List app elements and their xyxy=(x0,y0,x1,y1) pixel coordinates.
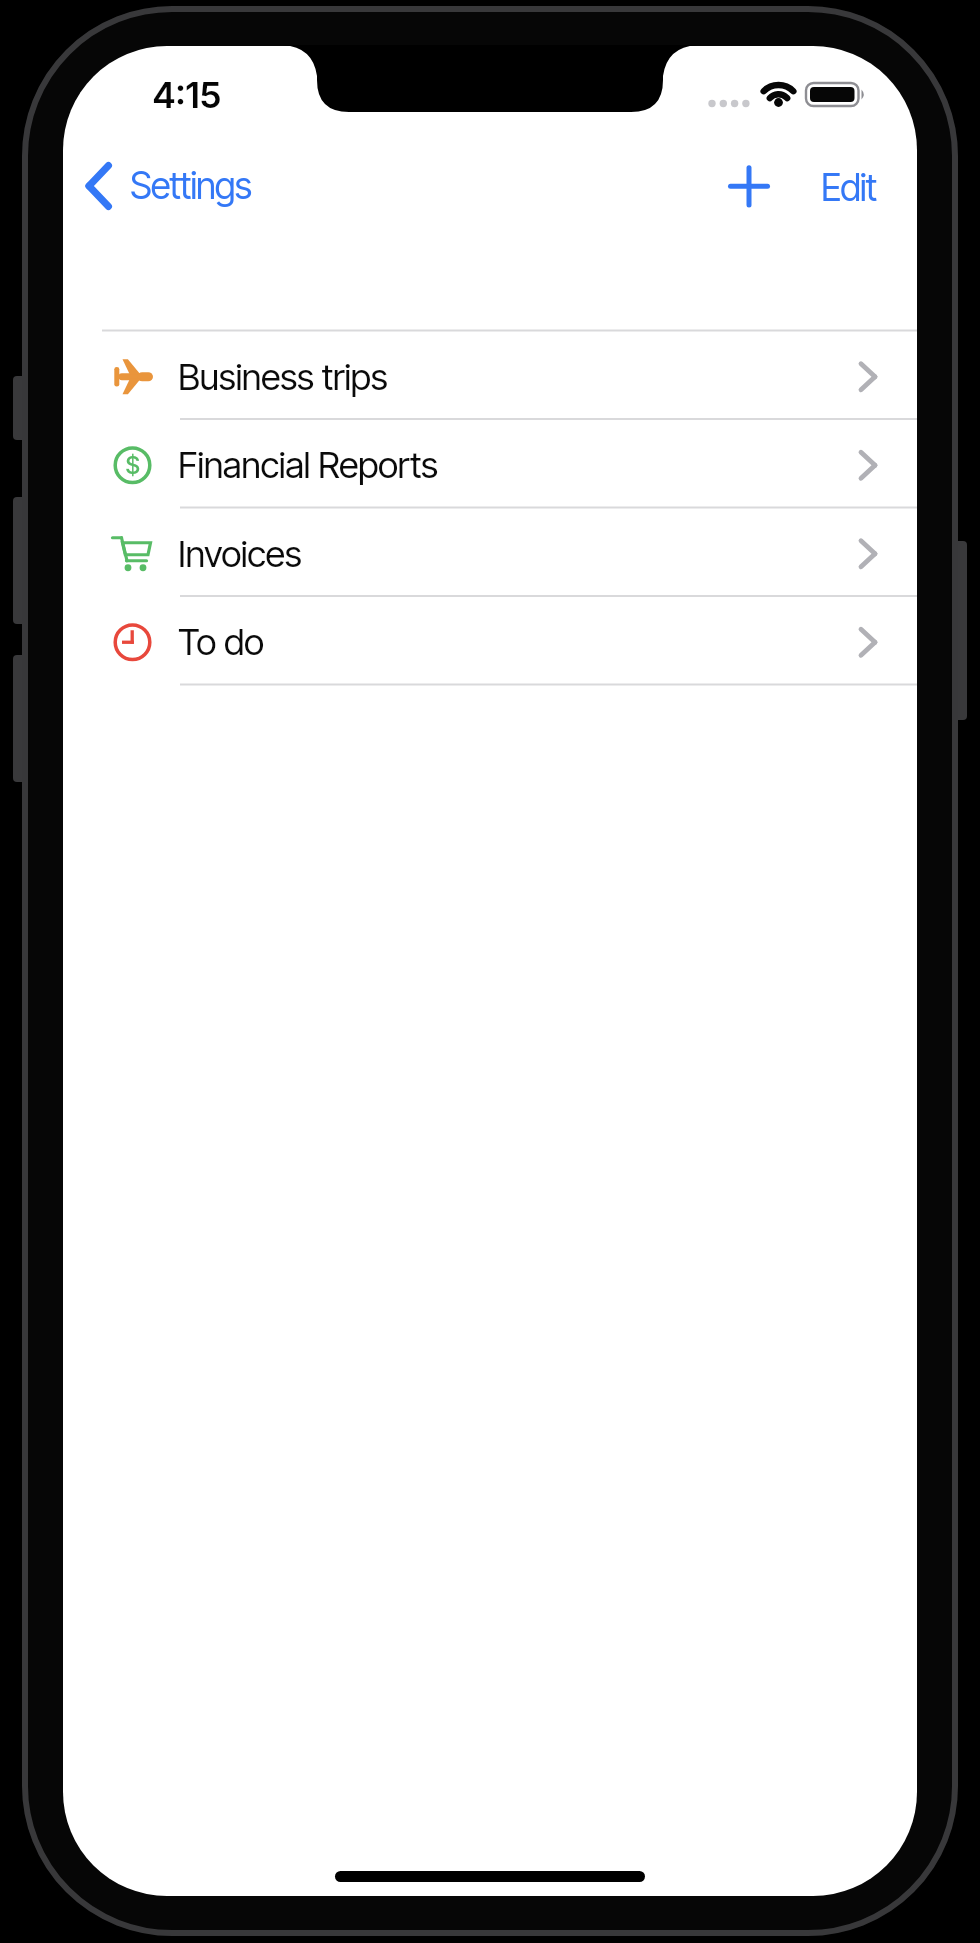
button[interactable]: Edit xyxy=(806,162,892,212)
button[interactable]: Financial Reports xyxy=(63,419,917,507)
staticText: Settings xyxy=(130,163,251,208)
staticText: Business trips xyxy=(178,355,388,399)
staticText: To do xyxy=(178,620,264,664)
staticText: 4:15 xyxy=(152,73,221,117)
staticText: Edit xyxy=(821,165,877,210)
staticText: $ xyxy=(125,451,141,480)
staticText: Invoices xyxy=(178,532,302,576)
button[interactable]: Business trips xyxy=(63,331,917,419)
button[interactable]: To do xyxy=(63,596,917,684)
button[interactable] xyxy=(722,159,776,213)
button[interactable]: Settings xyxy=(80,157,340,213)
staticText: Financial Reports xyxy=(178,443,438,487)
button[interactable]: Invoices xyxy=(63,508,917,596)
